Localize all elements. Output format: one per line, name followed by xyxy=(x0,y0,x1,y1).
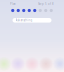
staticText: Plan xyxy=(10,2,16,6)
staticText: Step 5 of 8 xyxy=(38,2,54,6)
button[interactable]: Ask anything xyxy=(12,18,51,23)
staticText: Ask anything xyxy=(15,18,32,22)
